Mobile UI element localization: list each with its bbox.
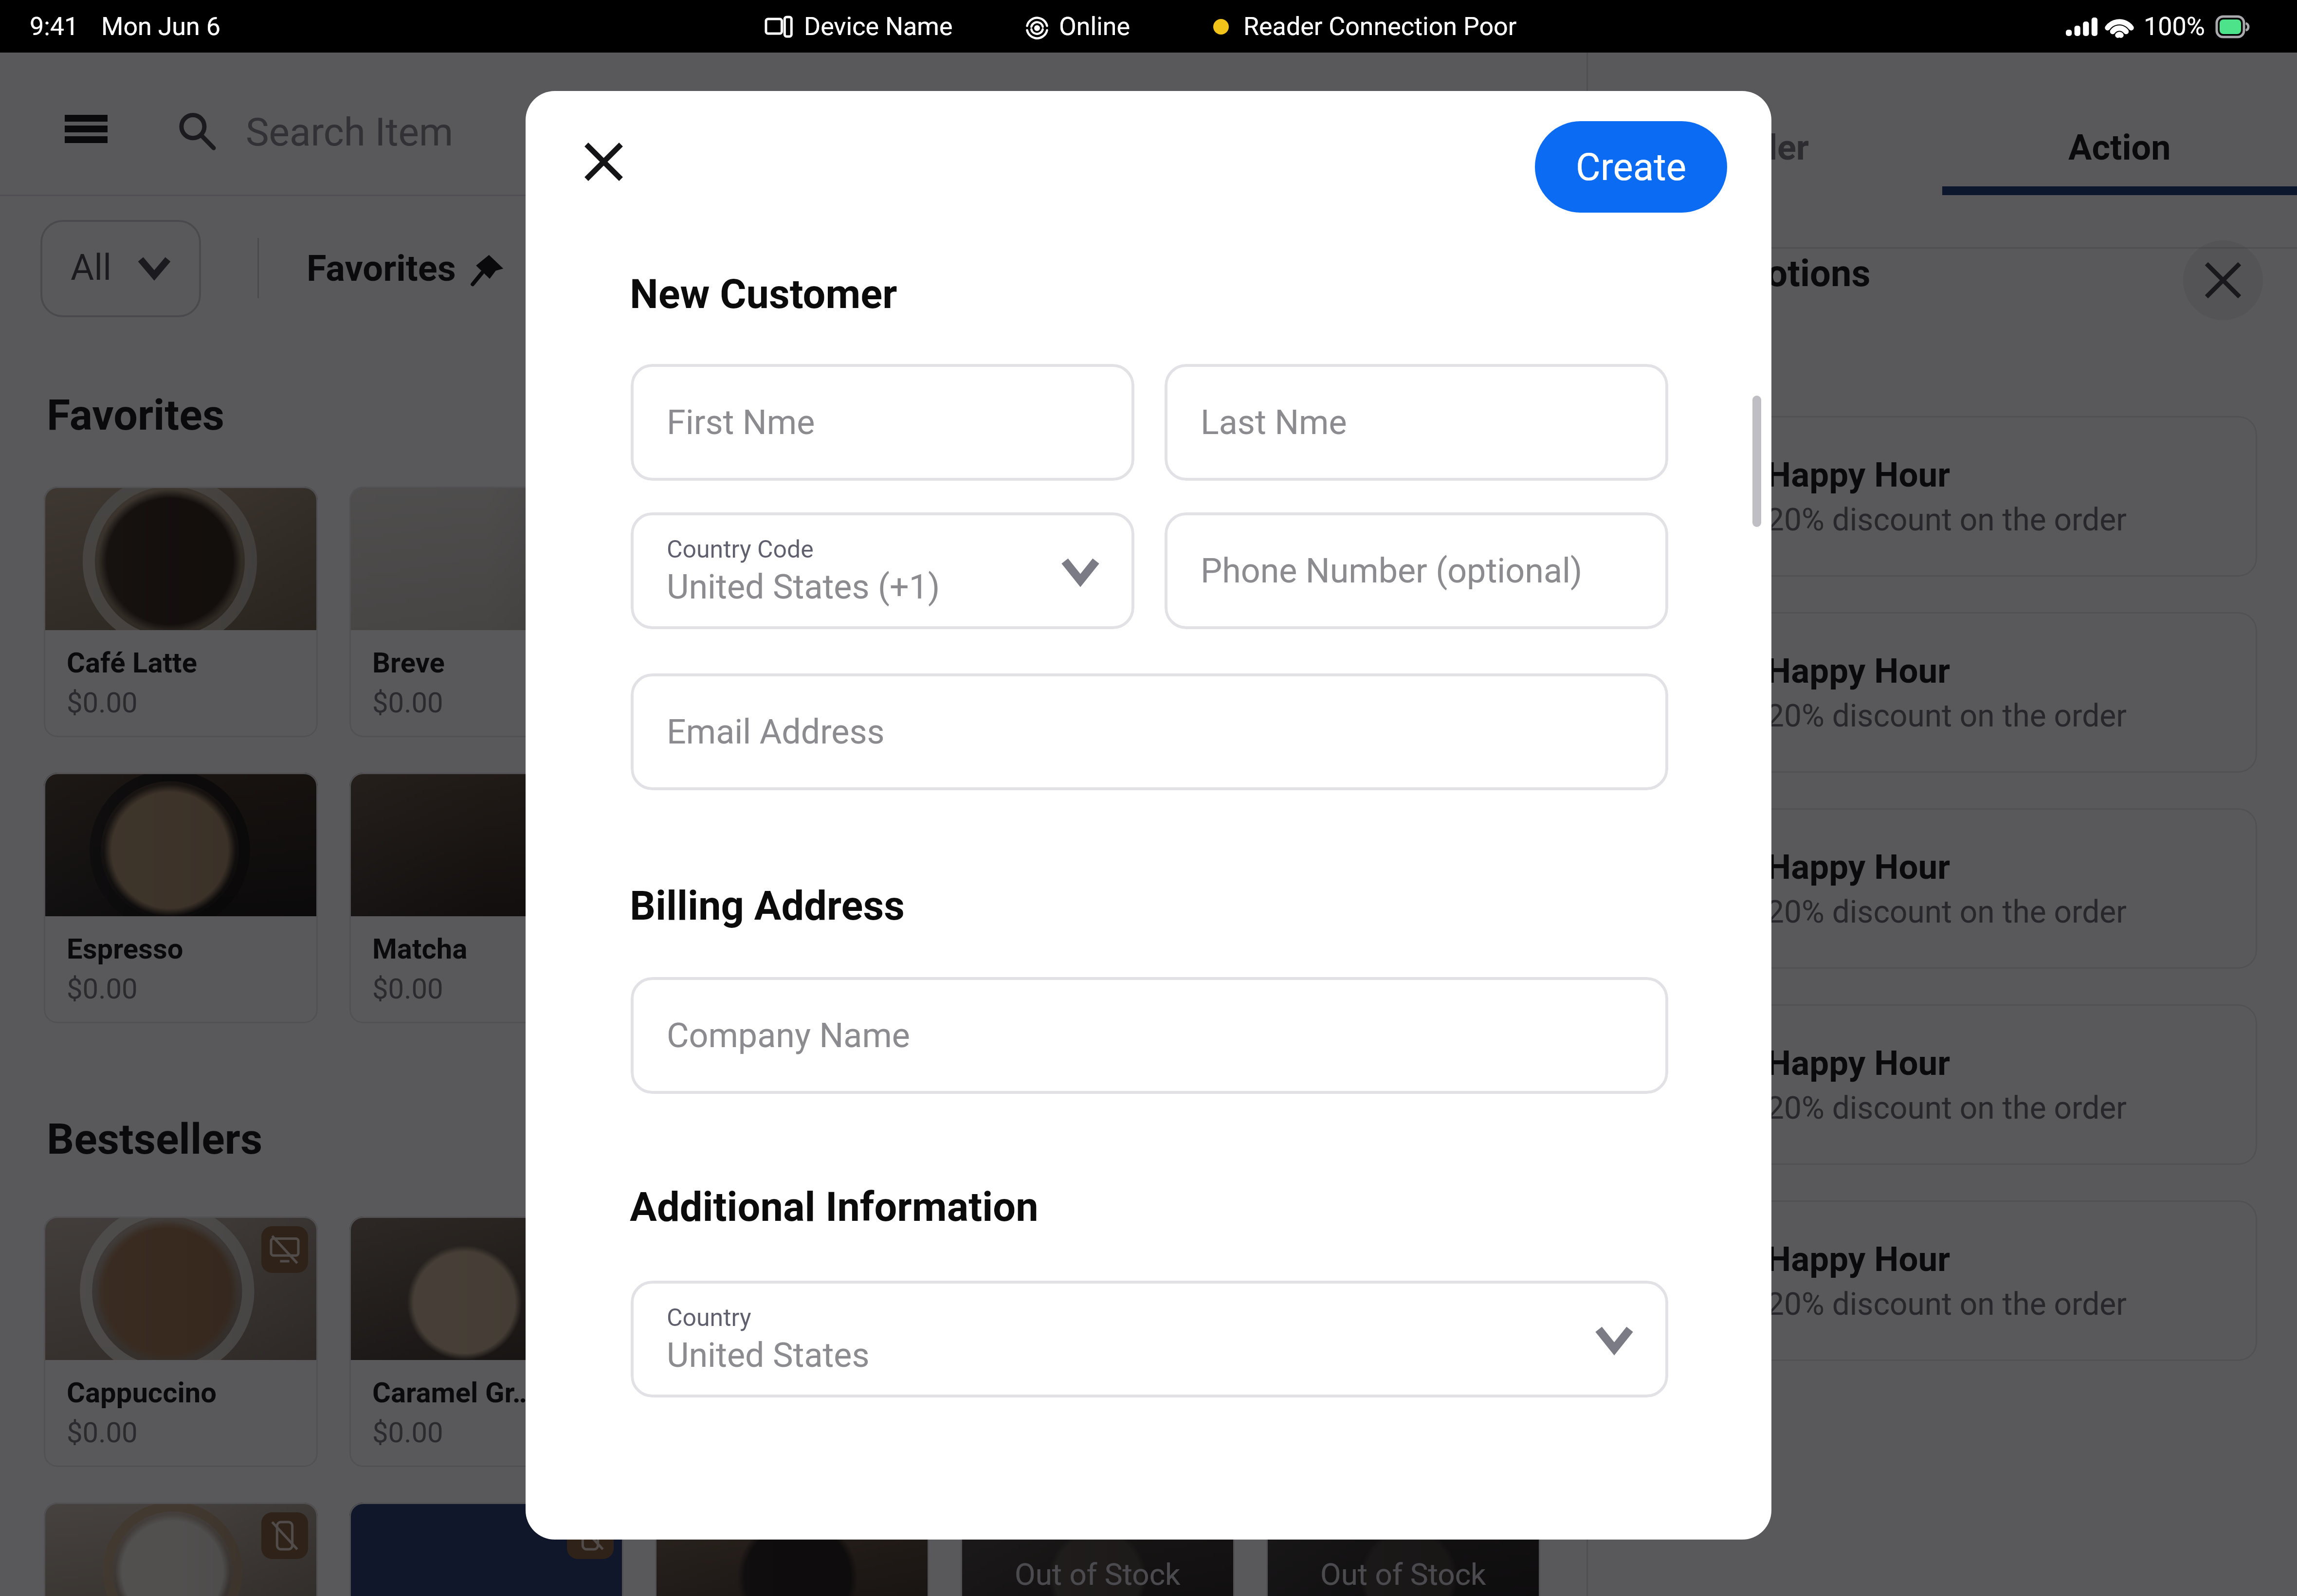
button[interactable]: Happy Hour <box>1739 416 2257 577</box>
button[interactable]: First Nme <box>631 364 1134 481</box>
staticText: All <box>71 246 112 289</box>
button[interactable]: Last Nme <box>1165 364 1668 481</box>
button[interactable]: Happy Hour <box>1739 808 2257 969</box>
staticText: Favorites <box>307 247 456 290</box>
button[interactable]: Close promotions <box>2183 240 2263 320</box>
button[interactable]: EB <box>349 1503 623 1596</box>
staticText: 20% discount on the order <box>1767 698 2127 734</box>
button[interactable]: Favorites <box>307 247 505 290</box>
button[interactable]: Macchiato <box>1266 773 1540 1023</box>
button[interactable]: Flat White <box>655 1216 929 1467</box>
button[interactable]: Breve <box>349 487 623 737</box>
staticText: Matcha <box>372 932 468 965</box>
staticText: $0.00 <box>67 686 138 719</box>
staticText: Cold Brew <box>678 646 807 679</box>
button[interactable]: Menu <box>55 101 117 157</box>
staticText: Bestsellers <box>47 1114 263 1164</box>
staticText: Espresso <box>67 932 183 965</box>
button[interactable]: Café Latte <box>44 487 318 737</box>
staticText: 20% discount on the order <box>1767 502 2127 538</box>
staticText: Cappuccino <box>67 1376 217 1409</box>
staticText: Favorites <box>47 390 225 440</box>
staticText: Caramel Gr… <box>372 1376 533 1409</box>
button[interactable]: Happy Hour <box>1739 1004 2257 1165</box>
staticText: Phone Number (optional) <box>1201 551 1583 591</box>
staticText: $0.00 <box>372 972 443 1005</box>
staticText: New Customer <box>630 271 897 318</box>
staticText: Iced Latte <box>984 1376 1110 1409</box>
button[interactable]: Latte <box>44 1503 318 1596</box>
button[interactable]: Company Name <box>631 977 1668 1094</box>
button[interactable]: Create <box>1535 121 1727 213</box>
button[interactable]: Happy Hour <box>1739 612 2257 773</box>
staticText: Country Code <box>667 535 814 564</box>
staticText: 9:41 <box>30 12 79 41</box>
button[interactable]: Order <box>1588 53 1942 195</box>
button[interactable]: Out of Stock <box>1266 1216 1540 1467</box>
button[interactable]: Out of Stock <box>961 1503 1235 1596</box>
staticText: Create <box>1576 145 1687 189</box>
staticText: $0.00 <box>678 686 749 719</box>
staticText: Email Address <box>667 712 885 752</box>
button[interactable]: Cold Brew <box>655 487 929 737</box>
staticText: Flat White <box>678 1376 805 1409</box>
button[interactable]: Drip <box>1266 487 1540 737</box>
staticText: United States (+1) <box>667 567 940 607</box>
button[interactable]: Action <box>1942 53 2297 195</box>
staticText: Happy Hour <box>1767 454 1951 495</box>
button[interactable]: Out of Stock <box>961 1216 1235 1467</box>
button[interactable]: Pour Over <box>655 1503 929 1596</box>
staticText: First Nme <box>667 402 815 442</box>
button[interactable]: Country <box>631 1281 1668 1397</box>
staticText: Happy Hour <box>1767 651 1951 691</box>
staticText: Out of Stock <box>1320 1270 1486 1306</box>
staticText: Country <box>667 1304 751 1332</box>
button[interactable]: Email Address <box>631 673 1668 790</box>
staticText: $0.00 <box>678 972 749 1005</box>
staticText: Happy Hour <box>1767 1043 1951 1083</box>
staticText: Out of Stock <box>1015 1557 1181 1592</box>
staticText: Out of Stock <box>1015 1270 1181 1306</box>
staticText: Order <box>1721 127 1809 168</box>
staticText: $0.00 <box>67 972 138 1005</box>
button[interactable]: Happy Hour <box>1739 1200 2257 1361</box>
button[interactable]: Phone Number (optional) <box>1165 512 1668 629</box>
staticText: Last Nme <box>1201 402 1347 442</box>
staticText: $0.00 <box>67 1416 138 1449</box>
staticText: United States <box>667 1335 870 1375</box>
button[interactable]: Americano <box>961 773 1235 1023</box>
button[interactable]: Out of Stock <box>1266 1503 1540 1596</box>
button[interactable]: Matcha <box>349 773 623 1023</box>
button[interactable]: Espresso <box>44 773 318 1023</box>
button[interactable]: Country Code <box>631 512 1134 629</box>
staticText: Happy Hour <box>1767 1239 1951 1279</box>
staticText: Breve <box>372 646 445 679</box>
staticText: Search Item <box>246 109 454 155</box>
staticText: Additional Information <box>630 1183 1039 1231</box>
button[interactable]: All <box>40 220 201 317</box>
staticText: Online <box>1059 12 1130 41</box>
button[interactable]: Cappuccino <box>44 1216 318 1467</box>
button[interactable]: Caramel Gr… <box>349 1216 623 1467</box>
button[interactable]: Mocha <box>655 773 929 1023</box>
staticText: Out of Stock <box>1320 1557 1486 1592</box>
button[interactable]: Close <box>572 130 635 193</box>
button[interactable]: Cortado <box>961 487 1235 737</box>
staticText: Café Latte <box>67 646 198 679</box>
staticText: $0.00 <box>372 686 443 719</box>
staticText: 20% discount on the order <box>1767 1090 2127 1126</box>
staticText: Happy Hour <box>1767 847 1951 887</box>
staticText: Device Name <box>804 12 953 41</box>
staticText: Promotions <box>1677 252 1871 295</box>
staticText: 100% <box>2144 12 2205 41</box>
staticText: Cortado <box>984 646 1086 679</box>
staticText: Company Name <box>667 1016 910 1055</box>
